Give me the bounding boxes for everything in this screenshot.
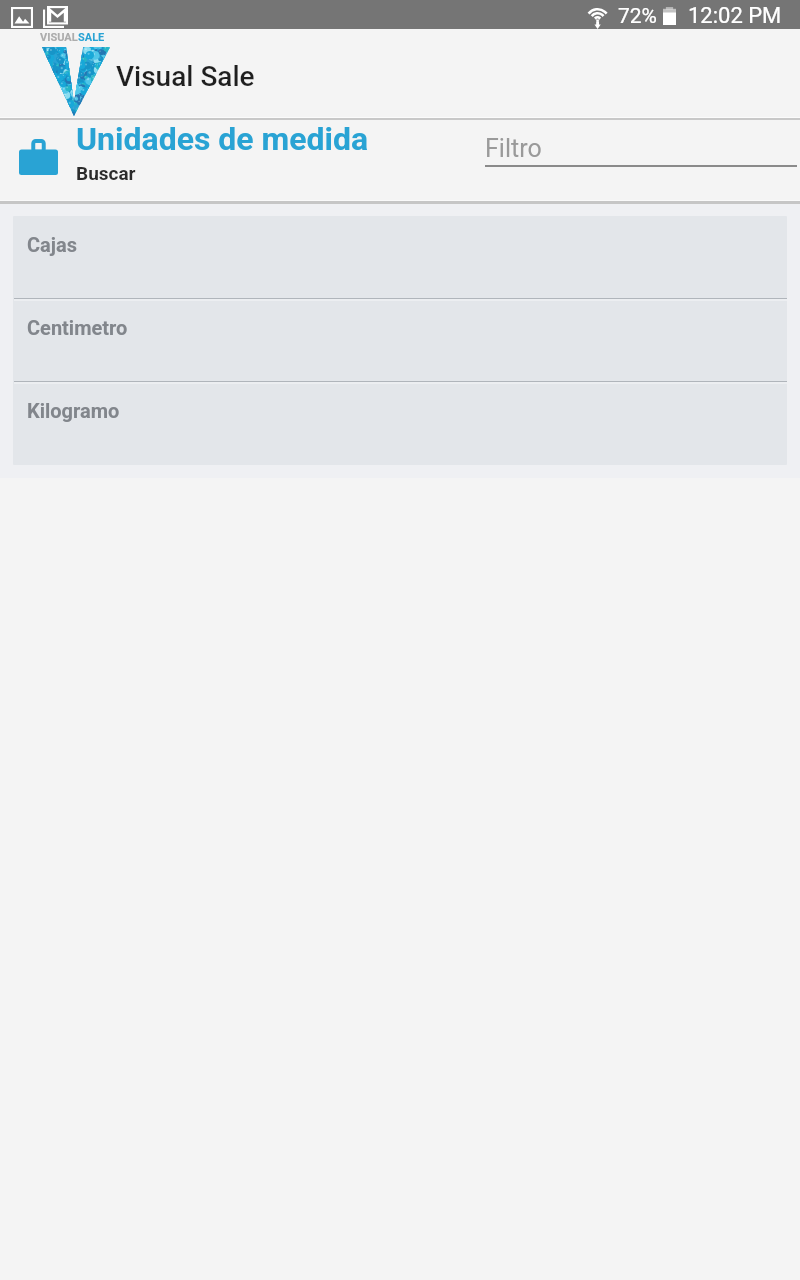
other: New Gmail message <box>43 6 68 28</box>
staticText: 72% <box>618 4 657 29</box>
staticText: Kilogramo <box>27 399 120 422</box>
staticText: Unidades de medida <box>76 120 369 158</box>
button[interactable] <box>0 120 470 200</box>
staticText: 12:02 PM <box>688 3 782 29</box>
staticText: Cajas <box>27 233 77 256</box>
other: Catalog <box>19 139 58 175</box>
button[interactable]: Filtro <box>485 134 797 163</box>
button[interactable]: Kilogramo <box>13 382 787 465</box>
staticText: SALE <box>78 31 105 44</box>
staticText: VISUAL <box>40 31 78 44</box>
button[interactable]: Cajas <box>13 216 787 299</box>
other: Wi-Fi connected, downloading <box>582 3 612 29</box>
staticText: Buscar <box>76 162 136 184</box>
staticText: Filtro <box>485 134 542 163</box>
staticText: Centimetro <box>27 316 128 339</box>
button[interactable]: Centimetro <box>13 299 787 382</box>
other: Screenshot captured <box>11 7 33 28</box>
staticText: Visual Sale <box>116 60 255 93</box>
